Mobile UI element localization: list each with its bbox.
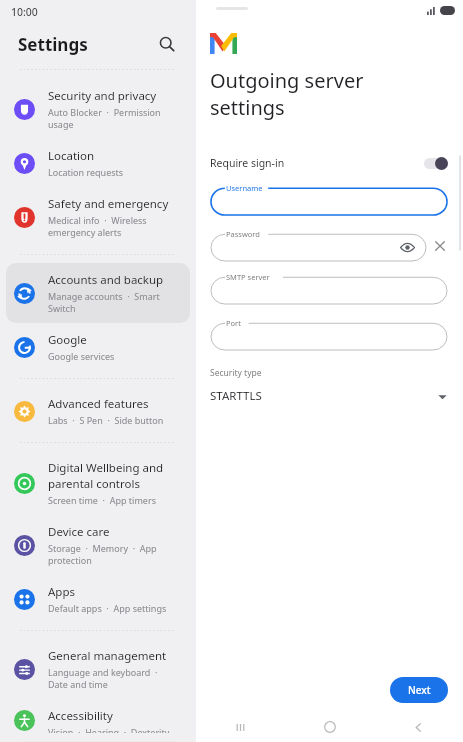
button[interactable]: Accounts and backup [6, 263, 190, 323]
button[interactable]: Clear password [427, 233, 453, 259]
staticText: Language and keyboard · Date and time [48, 666, 180, 690]
staticText: Screen time · App timers [48, 494, 156, 506]
staticText: Google [48, 332, 87, 348]
button[interactable]: Show password [399, 239, 416, 256]
staticText: Auto Blocker · Permission usage [48, 106, 180, 130]
button[interactable]: Username [210, 183, 448, 216]
button[interactable]: Back [374, 712, 463, 742]
staticText: Digital Wellbeing and parental controls [48, 460, 180, 492]
staticText: Default apps · App settings [48, 602, 167, 614]
staticText: Advanced features [48, 396, 149, 412]
button[interactable]: Security type [210, 367, 448, 404]
button[interactable]: Security and privacy [6, 79, 190, 139]
staticText: Port [226, 318, 241, 328]
staticText: SMTP server [226, 272, 270, 282]
staticText: Password [226, 229, 260, 239]
staticText: Medical info · Wireless emergency alerts [48, 214, 180, 238]
button[interactable]: Digital Wellbeing and parental controls [6, 451, 190, 515]
button[interactable]: Accessibility [6, 699, 190, 742]
staticText: Outgoing server settings [210, 67, 364, 121]
button[interactable]: Next [390, 677, 448, 703]
button[interactable]: Google [6, 323, 190, 371]
button[interactable]: Advanced features [6, 387, 190, 435]
staticText: Location requests [48, 166, 124, 178]
button[interactable]: Device care [6, 515, 190, 575]
staticText: Google services [48, 350, 115, 362]
staticText: Labs · S Pen · Side button [48, 414, 164, 426]
staticText: Apps [48, 584, 76, 600]
staticText: Location [48, 148, 95, 164]
staticText: Vision · Hearing · Dexterity [48, 726, 170, 733]
button[interactable]: General management [6, 639, 190, 699]
staticText: Username [226, 183, 263, 193]
staticText: Security and privacy [48, 88, 157, 104]
button[interactable]: Require sign-in toggle [424, 157, 448, 170]
button[interactable]: Password [210, 229, 427, 262]
staticText: Device care [48, 524, 110, 540]
button[interactable]: SMTP server [210, 272, 448, 305]
staticText: 10:00 [11, 5, 38, 19]
staticText: General management [48, 648, 167, 664]
staticText: Require sign-in [210, 156, 424, 170]
button[interactable]: Home [285, 712, 374, 742]
staticText: Storage · Memory · App protection [48, 542, 180, 566]
staticText: STARTTLS [210, 388, 437, 404]
button[interactable]: Location [6, 139, 190, 187]
staticText: Settings [18, 33, 88, 56]
staticText: Next [408, 683, 431, 697]
button[interactable]: Require sign-in [210, 156, 448, 170]
button[interactable]: Safety and emergency [6, 187, 190, 247]
button[interactable]: Recent apps [196, 712, 285, 742]
button[interactable]: Port [210, 318, 448, 351]
button[interactable]: Apps [6, 575, 190, 623]
staticText: Manage accounts · Smart Switch [48, 290, 180, 314]
staticText: Accounts and backup [48, 272, 164, 288]
button[interactable]: Search settings [152, 29, 182, 59]
staticText: Safety and emergency [48, 196, 169, 212]
staticText: Accessibility [48, 708, 113, 724]
staticText: Security type [210, 367, 262, 379]
